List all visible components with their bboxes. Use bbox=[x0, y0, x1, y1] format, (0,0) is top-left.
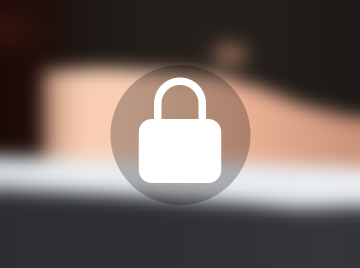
button[interactable]: Locked bbox=[0, 0, 360, 268]
